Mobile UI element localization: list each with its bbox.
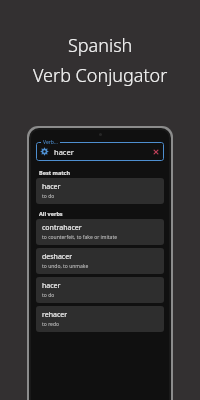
staticText: to do [42,193,55,200]
button[interactable]: hacer [36,178,164,204]
button[interactable]: hacer [36,277,164,303]
staticText: to undo, to unmake [42,263,89,270]
staticText: hacer [54,147,74,157]
button[interactable]: contrahacer [36,219,164,245]
staticText: to counterfeit, to fake or imitate [42,234,118,241]
staticText: Best match [39,169,70,176]
staticText: deshacer [42,252,73,262]
button[interactable]: Verb options [40,147,49,156]
staticText: Verb Conjugator [33,63,168,88]
button[interactable]: rehacer [36,306,164,332]
staticText: rehacer [42,310,68,320]
button[interactable]: deshacer [36,248,164,274]
staticText: hacer [42,182,61,192]
button[interactable]: Verb options [36,139,164,161]
staticText: contrahacer [42,223,82,233]
staticText: to redo [42,321,60,328]
staticText: Verb... [43,139,58,146]
button[interactable]: Clear [152,148,160,156]
staticText: All verbs [39,210,63,217]
staticText: hacer [42,281,61,291]
staticText: to do [42,292,55,299]
staticText: Spanish [68,33,133,58]
